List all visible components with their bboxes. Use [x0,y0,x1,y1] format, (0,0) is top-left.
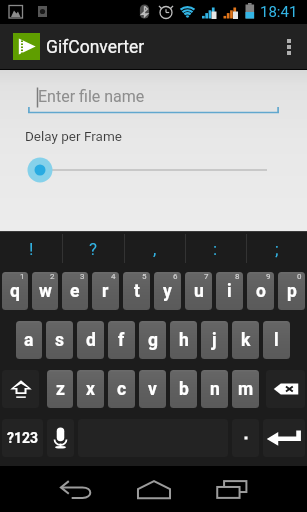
staticText: 1 [20,272,25,281]
staticText: 9 [266,272,271,281]
button[interactable]: Recent apps [193,466,271,512]
staticText: ?123 [7,430,39,446]
button[interactable]: Enter file name [28,84,279,114]
staticText: , [153,239,157,259]
button[interactable]: Shift [2,370,39,408]
button[interactable]: , [124,231,185,266]
button[interactable]: q [2,272,28,310]
staticText: 3 [80,272,85,281]
button[interactable]: ? [62,231,124,266]
staticText: b [179,379,189,400]
staticText: f [118,330,125,351]
staticText: 2 [50,272,55,281]
staticText: d [86,330,96,351]
staticText: : [213,239,218,259]
button[interactable]: More options [271,24,307,70]
staticText: j [212,330,217,351]
staticText: t [134,281,140,302]
staticText: 18:41 [260,3,298,21]
button[interactable]: Back [37,466,115,512]
button[interactable]: Enter [263,419,305,457]
staticText: q [10,281,20,302]
button[interactable]: u [185,272,212,310]
staticText: m [238,379,254,400]
button[interactable]: ; [246,231,307,266]
staticText: e [70,281,80,302]
button[interactable]: x [77,370,104,408]
staticText: x [86,379,95,400]
button[interactable]: z [47,370,73,408]
button[interactable]: i [216,272,243,310]
button[interactable]: k [232,321,259,359]
button[interactable]: w [32,272,58,310]
staticText: ; [275,239,279,259]
staticText: o [256,281,266,302]
staticText: n [210,379,220,400]
button[interactable]: o [247,272,274,310]
staticText: p [287,281,297,302]
staticText: z [56,379,65,400]
button[interactable]: a [16,321,42,359]
button[interactable]: Home [115,466,193,512]
staticText: h [179,330,189,351]
staticText: ? [89,239,98,259]
staticText: 4 [111,272,116,281]
button[interactable]: h [170,321,197,359]
button[interactable]: : [185,231,246,266]
button[interactable]: p [278,272,305,310]
staticText: y [163,281,172,302]
button[interactable]: b [170,370,197,408]
staticText: Delay per Frame [25,128,122,144]
button[interactable]: Backspace [266,370,305,408]
staticText: w [39,281,52,302]
button[interactable]: r [92,272,119,310]
staticText: 0 [297,272,302,281]
staticText: GifConverter [46,37,145,58]
button[interactable]: l [263,321,290,359]
staticText: 6 [173,272,178,281]
staticText: ! [29,239,34,259]
staticText: l [274,330,279,351]
staticText: u [194,281,204,302]
button[interactable]: Symbols [2,419,43,457]
button[interactable]: Delay per frame slider [0,154,307,186]
staticText: v [148,379,157,400]
button[interactable]: s [46,321,73,359]
button[interactable]: y [154,272,181,310]
button[interactable]: e [62,272,88,310]
button[interactable]: j [201,321,228,359]
button[interactable]: v [139,370,166,408]
staticText: 5 [142,272,147,281]
staticText: k [241,330,251,351]
button[interactable]: ! [0,231,62,266]
staticText: 7 [204,272,209,281]
button[interactable]: m [232,370,259,408]
staticText: Enter file name [38,87,145,106]
staticText: r [102,281,109,302]
button[interactable]: g [139,321,166,359]
button[interactable]: Voice input [47,419,74,457]
staticText: g [148,330,158,351]
staticText: 8 [235,272,240,281]
staticText: s [55,330,65,351]
button[interactable]: f [108,321,135,359]
button[interactable]: t [123,272,150,310]
button[interactable]: Period [232,419,259,457]
button[interactable]: c [108,370,135,408]
staticText: i [227,281,232,302]
button[interactable]: d [77,321,104,359]
staticText: c [117,379,127,400]
button[interactable]: n [201,370,228,408]
staticText: a [24,330,34,351]
